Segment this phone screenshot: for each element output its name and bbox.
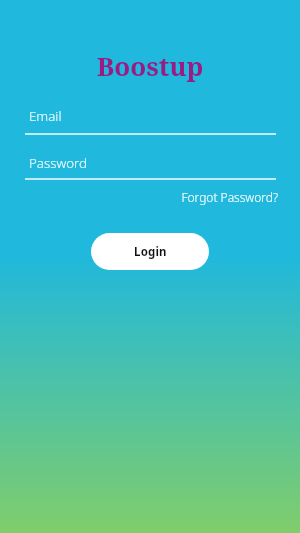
button[interactable]: Forgot Password? [179, 187, 280, 207]
button[interactable]: Password [25, 151, 276, 182]
staticText: Boostup [0, 48, 300, 83]
staticText: Login [134, 244, 167, 260]
button[interactable]: Login [91, 233, 209, 270]
staticText: Email [29, 107, 62, 125]
staticText: Password [29, 154, 87, 172]
button[interactable]: Email [25, 104, 276, 137]
